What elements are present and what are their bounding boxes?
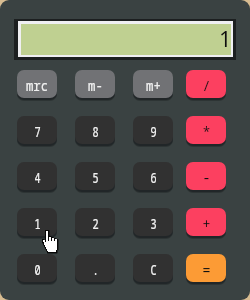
staticText: 3: [150, 214, 157, 233]
staticText: /: [202, 76, 211, 95]
staticText: m-: [88, 76, 103, 95]
button[interactable]: m+: [133, 70, 173, 98]
staticText: 8: [92, 122, 99, 141]
button[interactable]: 5: [75, 162, 115, 190]
button[interactable]: 0: [17, 254, 57, 282]
staticText: 2: [92, 214, 99, 233]
staticText: mrc: [26, 76, 48, 95]
staticText: 6: [150, 168, 157, 187]
button[interactable]: *: [186, 116, 226, 144]
staticText: m+: [146, 76, 161, 95]
button[interactable]: .: [75, 254, 115, 282]
staticText: .: [92, 260, 99, 279]
button[interactable]: =: [186, 254, 226, 282]
staticText: +: [202, 214, 211, 233]
button[interactable]: 8: [75, 116, 115, 144]
button[interactable]: 6: [133, 162, 173, 190]
staticText: 0: [34, 260, 41, 279]
button[interactable]: -: [186, 162, 226, 190]
button[interactable]: 2: [75, 208, 115, 236]
staticText: 9: [150, 122, 157, 141]
staticText: 1: [34, 214, 41, 233]
other: Pointer: [41, 230, 58, 253]
button[interactable]: C: [133, 254, 173, 282]
staticText: 1: [219, 23, 232, 53]
button[interactable]: mrc: [17, 70, 57, 98]
button[interactable]: m-: [75, 70, 115, 98]
button[interactable]: +: [186, 208, 226, 236]
staticText: -: [202, 168, 211, 187]
staticText: =: [202, 260, 211, 279]
staticText: C: [150, 260, 157, 279]
button[interactable]: /: [186, 70, 226, 98]
button[interactable]: 4: [17, 162, 57, 190]
button[interactable]: 9: [133, 116, 173, 144]
button[interactable]: Display shows 1: [21, 24, 231, 55]
staticText: *: [202, 122, 211, 141]
staticText: 7: [34, 122, 41, 141]
button[interactable]: 3: [133, 208, 173, 236]
staticText: 5: [92, 168, 99, 187]
staticText: 4: [34, 168, 41, 187]
button[interactable]: 1: [17, 208, 57, 236]
button[interactable]: 7: [17, 116, 57, 144]
